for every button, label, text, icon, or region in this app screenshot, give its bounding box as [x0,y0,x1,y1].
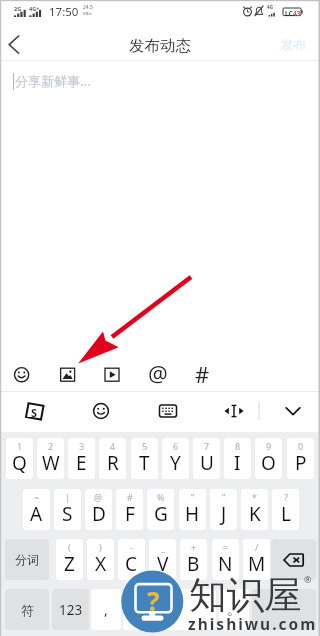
button[interactable]: ) [87,539,114,580]
staticText: 知识屋 [189,572,302,619]
staticText: F [125,501,135,527]
button[interactable]: 123 [52,589,89,630]
button[interactable]: 9 [255,438,282,479]
staticText: Y [170,450,181,476]
button[interactable]: # [116,489,143,530]
button[interactable]: / [243,539,270,580]
staticText: = [223,541,229,553]
staticText: ? [284,491,288,503]
staticText: M [248,551,266,577]
staticText: 0 [298,440,304,452]
staticText: T [139,450,150,476]
staticText: B [187,551,200,577]
button[interactable]: Backspace [271,539,316,580]
staticText: 43 [293,9,301,18]
staticText: 24.5 [83,4,93,11]
staticText: O [261,450,276,476]
staticText: 4G [267,4,273,10]
staticText: E [76,450,87,476]
staticText: ( [68,541,71,553]
staticText: P [295,450,307,476]
staticText: “ [191,491,195,503]
staticText: 8 [235,440,241,452]
staticText: W [42,450,60,476]
staticText: / [255,541,259,553]
button[interactable]: 3 [68,438,95,479]
staticText: ® [304,573,312,585]
staticText: + [191,541,197,553]
staticText: LC [285,9,293,18]
staticText: 123 [59,601,83,619]
staticText: 7 [204,440,210,452]
button[interactable]: ~ [23,489,50,530]
staticText: S [62,501,73,527]
staticText: 3 [79,440,85,452]
button[interactable] [252,589,316,630]
button[interactable]: 2 [37,438,64,479]
staticText: % [157,491,165,503]
button[interactable]: _ [149,539,176,580]
staticText: 分享新鲜事... [15,72,91,90]
staticText: Z [64,551,75,577]
button[interactable]: ( [56,539,83,580]
staticText: 发布 [281,37,306,53]
staticText: Q [12,450,27,476]
button[interactable]: 6 [162,438,189,479]
staticText: J [221,501,227,527]
staticText: N [218,551,233,577]
button[interactable]: | [54,489,81,530]
staticText: 发布动态 [129,36,191,56]
staticText: 1 [17,440,23,452]
button[interactable]: * [241,489,268,530]
staticText: 2G [14,5,22,13]
button[interactable] [123,589,216,630]
staticText: I [234,450,241,476]
staticText: 9 [266,440,272,452]
staticText: _ [161,541,165,553]
button[interactable]: @ [85,489,112,530]
button[interactable]: ? [272,489,299,530]
button[interactable]: Back [0,21,40,61]
staticText: 6 [173,440,179,452]
staticText: K [249,501,261,527]
staticText: ? [147,583,160,618]
button[interactable]: 8 [224,438,251,479]
staticText: ~ [34,491,40,503]
button[interactable]: ” [210,489,237,530]
button[interactable]: - [118,539,145,580]
staticText: @ [148,358,168,388]
staticText: zhishiwu.com [188,613,318,634]
button[interactable]: % [147,489,174,530]
staticText: L [281,501,291,527]
staticText: 。 [227,601,241,619]
staticText: - [130,541,133,553]
button[interactable]: + [180,539,207,580]
staticText: U [200,450,214,476]
staticText: X [95,551,107,577]
staticText: G [154,501,168,527]
staticText: * [252,491,257,503]
staticText: # [195,359,210,389]
button[interactable]: = [212,539,239,580]
button[interactable]: 0 [287,438,314,479]
staticText: D [92,501,106,527]
button[interactable]: 符 [5,589,49,630]
button[interactable]: 。 [219,589,249,630]
button[interactable]: 5 [131,438,158,479]
staticText: H [185,501,200,527]
button[interactable]: 分词 [5,539,49,580]
button[interactable]: 发布 [281,37,306,53]
button[interactable]: 7 [193,438,220,479]
staticText: C [125,551,138,577]
button[interactable]: “ [179,489,206,530]
staticText: A [30,501,43,527]
staticText: 4 [110,440,116,452]
staticText: R [107,450,119,476]
button[interactable]: 4 [99,438,126,479]
button[interactable]: , [91,589,121,630]
staticText: 17:50 [49,4,79,20]
button[interactable]: 1 [6,438,33,479]
staticText: , [104,600,108,619]
staticText: | [65,491,70,503]
staticText: S [31,405,38,420]
